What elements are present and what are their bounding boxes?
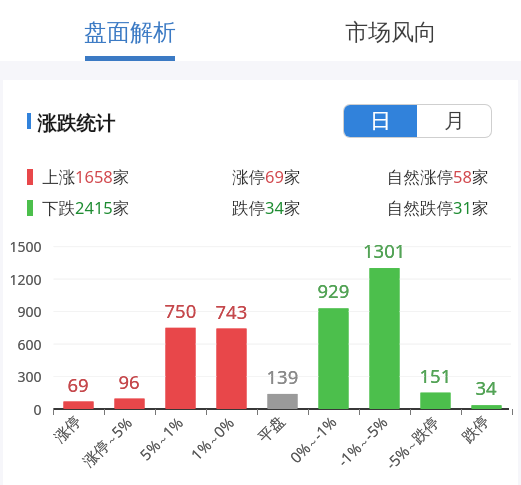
staticText: 日 xyxy=(370,108,391,134)
button[interactable]: 日 xyxy=(344,105,417,137)
button[interactable]: 月 xyxy=(417,105,491,137)
staticText: 市场风向 xyxy=(345,18,437,47)
staticText: 涨跌统计 xyxy=(37,111,115,136)
staticText: 下跌2415家 xyxy=(42,196,130,219)
button[interactable]: 盘面解析 xyxy=(0,0,260,61)
staticText: 涨停69家 xyxy=(232,165,301,188)
staticText: 跌停34家 xyxy=(232,196,301,219)
staticText: 自然涨停58家 xyxy=(387,165,489,188)
button[interactable]: 市场风向 xyxy=(260,0,521,61)
staticText: 月 xyxy=(444,108,465,134)
staticText: 盘面解析 xyxy=(84,18,176,47)
staticText: 自然跌停31家 xyxy=(387,196,489,219)
staticText: 上涨1658家 xyxy=(42,165,130,188)
